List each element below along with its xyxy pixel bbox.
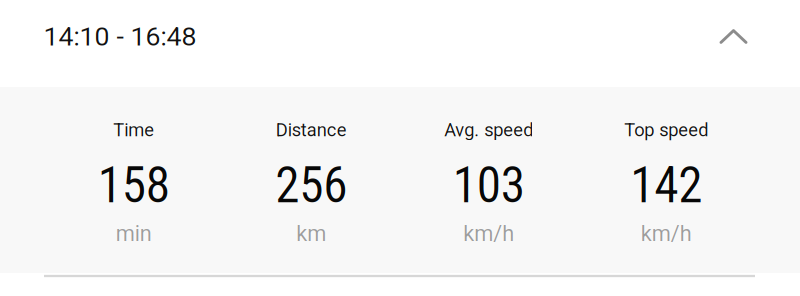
button[interactable]: 14:10 - 16:48 <box>0 0 800 87</box>
staticText: Avg. speed <box>444 119 533 141</box>
staticText: 103 <box>453 157 525 214</box>
staticText: 14:10 - 16:48 <box>43 21 196 52</box>
staticText: 142 <box>630 157 702 214</box>
staticText: Distance <box>276 119 347 141</box>
staticText: km/h <box>641 221 692 246</box>
staticText: 256 <box>275 157 347 214</box>
staticText: 158 <box>98 157 170 214</box>
staticText: Top speed <box>624 119 708 141</box>
staticText: km/h <box>463 221 514 246</box>
staticText: km <box>296 221 326 246</box>
staticText: min <box>116 221 152 246</box>
staticText: Time <box>113 119 154 141</box>
